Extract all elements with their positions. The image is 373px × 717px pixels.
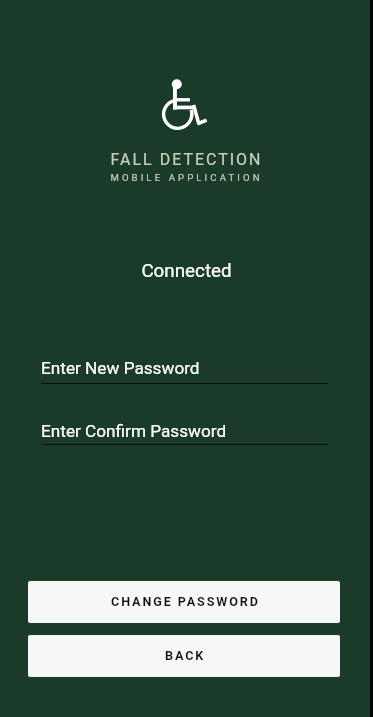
staticText: Connected <box>141 260 232 282</box>
button[interactable]: CHANGE PASSWORD <box>28 581 340 623</box>
other: Accessibility logo <box>160 78 208 132</box>
staticText: CHANGE PASSWORD <box>111 594 260 609</box>
staticText: Enter New Password <box>41 358 200 378</box>
button[interactable]: BACK <box>28 635 340 677</box>
staticText: FALL DETECTION <box>110 150 263 169</box>
staticText: MOBILE APPLICATION <box>110 172 263 183</box>
staticText: Enter Confirm Password <box>41 421 227 441</box>
button[interactable]: Enter Confirm Password <box>41 421 328 451</box>
button[interactable]: Enter New Password <box>41 358 328 388</box>
staticText: BACK <box>165 648 206 663</box>
